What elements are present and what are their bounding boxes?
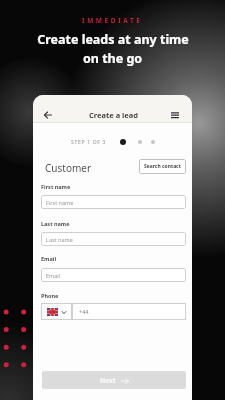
button[interactable] xyxy=(40,107,56,123)
staticText: Phone xyxy=(41,292,59,299)
button[interactable]: Email xyxy=(41,268,186,282)
staticText: Last name xyxy=(46,236,73,243)
button[interactable] xyxy=(167,107,183,123)
button[interactable] xyxy=(41,303,72,320)
staticText: Customer xyxy=(45,161,92,175)
staticText: Email xyxy=(41,255,57,262)
staticText: First name xyxy=(41,183,71,190)
staticText: Next xyxy=(100,376,116,385)
staticText: on the go xyxy=(83,50,143,67)
staticText: +44 xyxy=(79,308,89,315)
button[interactable]: Last name xyxy=(41,232,186,246)
staticText: First name xyxy=(46,199,74,206)
button[interactable]: +44 xyxy=(72,303,186,320)
staticText: Email xyxy=(46,272,61,279)
staticText: Create leads at any time xyxy=(37,31,189,48)
button[interactable]: Search contact xyxy=(139,159,186,174)
staticText: Create a lead xyxy=(89,110,139,120)
staticText: STEP 1 OF 3 xyxy=(71,139,107,146)
button[interactable]: First name xyxy=(41,195,186,209)
staticText: IMMEDIATE xyxy=(82,16,143,25)
staticText: Last name xyxy=(41,220,70,227)
staticText: Search contact xyxy=(144,163,181,170)
button[interactable]: Next xyxy=(42,371,186,389)
